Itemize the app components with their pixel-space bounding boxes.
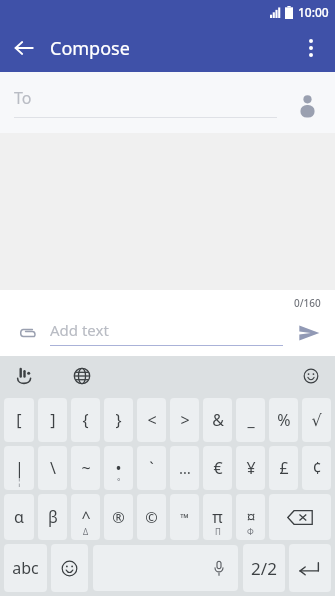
staticText: ® (112, 507, 125, 527)
button[interactable]: [ (4, 398, 34, 442)
staticText: … (179, 458, 191, 478)
button[interactable]: More options (287, 24, 335, 72)
staticText: √ (311, 411, 322, 430)
staticText: & (212, 409, 224, 431)
button[interactable]: √ (302, 398, 331, 442)
staticText: π (212, 506, 223, 528)
button[interactable]: ] (38, 398, 67, 442)
staticText: To (14, 87, 32, 109)
button[interactable]: € (203, 446, 232, 490)
staticText: ¥ (246, 457, 256, 479)
staticText: ¦ (17, 476, 22, 487)
button[interactable]: To (14, 87, 277, 118)
button[interactable]: ¥ (236, 446, 265, 490)
button[interactable]: … (170, 446, 199, 490)
button[interactable]: _ (236, 398, 265, 442)
button[interactable]: Space (93, 545, 238, 591)
staticText: Π (215, 526, 221, 537)
staticText: { (82, 409, 89, 431)
staticText: ` (149, 457, 154, 479)
staticText: < (147, 409, 157, 431)
button[interactable]: £ (269, 446, 298, 490)
staticText: Δ (83, 526, 89, 537)
button[interactable]: ® (104, 494, 133, 540)
staticText: Add text (50, 320, 109, 340)
staticText: 0/160 (294, 296, 321, 310)
button[interactable]: ¤ (236, 494, 265, 540)
button[interactable]: Emoji (51, 544, 88, 592)
staticText: abc (12, 557, 39, 579)
button[interactable]: ™ (170, 494, 199, 540)
staticText: 10:00 (298, 4, 329, 20)
staticText: £ (279, 457, 289, 479)
staticText: ^ (81, 506, 91, 528)
button[interactable]: Enter (289, 544, 331, 592)
staticText: ¤ (246, 506, 256, 528)
staticText: ° (117, 476, 121, 487)
staticText: [ (16, 409, 22, 431)
button[interactable]: Add contact (287, 83, 327, 123)
button[interactable]: ` (137, 446, 166, 490)
staticText: © (145, 507, 158, 527)
button[interactable]: > (170, 398, 199, 442)
staticText: Compose (50, 36, 130, 61)
staticText: α (14, 506, 24, 528)
button[interactable]: β (38, 494, 67, 540)
button[interactable]: π (203, 494, 232, 540)
staticText: 2/2 (251, 557, 277, 580)
button[interactable]: } (104, 398, 133, 442)
button[interactable]: & (203, 398, 232, 442)
button[interactable]: Backspace (269, 494, 331, 540)
button[interactable]: Handwriting (6, 358, 42, 394)
staticText: Φ (247, 526, 254, 537)
button[interactable]: Change language (64, 358, 100, 394)
button[interactable]: Attach (10, 316, 44, 350)
button[interactable]: \ (38, 446, 67, 490)
staticText: € (213, 457, 223, 479)
staticText: ¢ (312, 457, 322, 479)
button[interactable]: α (4, 494, 34, 540)
button[interactable]: 2/2 (243, 544, 285, 592)
button[interactable]: Back (0, 24, 48, 72)
staticText: _ (247, 409, 255, 431)
staticText: ™ (180, 510, 189, 525)
button[interactable]: • (104, 446, 133, 490)
button[interactable]: ¢ (302, 446, 331, 490)
button[interactable]: | (4, 446, 34, 490)
staticText: | (15, 457, 24, 479)
button[interactable]: ^ (71, 494, 100, 540)
staticText: β (48, 506, 58, 528)
staticText: ~ (81, 457, 91, 479)
button[interactable]: abc (4, 544, 47, 592)
button[interactable]: Send (291, 315, 327, 351)
staticText: > (180, 409, 190, 431)
button[interactable]: © (137, 494, 166, 540)
button[interactable]: % (269, 398, 298, 442)
staticText: • (115, 457, 122, 479)
staticText: } (115, 409, 122, 431)
staticText: \ (50, 457, 56, 479)
button[interactable]: Emoji (293, 358, 329, 394)
button[interactable]: < (137, 398, 166, 442)
staticText: % (277, 409, 291, 431)
button[interactable]: Add text (50, 320, 283, 346)
button[interactable]: { (71, 398, 100, 442)
staticText: ] (50, 409, 56, 431)
button[interactable]: ~ (71, 446, 100, 490)
